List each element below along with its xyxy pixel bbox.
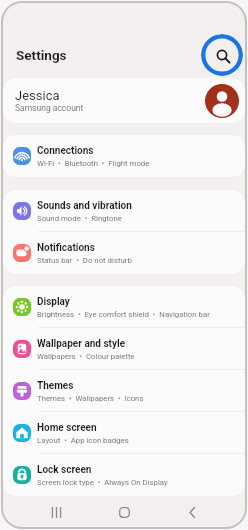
button[interactable]: Recent apps — [41, 497, 71, 527]
staticText: Lock screen — [37, 464, 92, 476]
staticText: Sounds and vibration — [37, 200, 132, 212]
button[interactable]: Back — [177, 497, 207, 527]
staticText: Themes — [37, 380, 74, 392]
staticText: Wallpapers • Colour palette — [37, 352, 135, 361]
staticText: Status bar • Do not disturb — [37, 256, 132, 265]
staticText: Screen lock type • Always On Display — [37, 478, 168, 487]
button[interactable]: Display — [3, 286, 245, 328]
staticText: Layout • App icon badges — [37, 436, 129, 445]
staticText: Themes • Wallpapers • Icons — [37, 394, 144, 403]
button[interactable]: Themes — [3, 370, 245, 412]
staticText: Sound mode • Ringtone — [37, 214, 122, 223]
button[interactable]: Lock screen — [3, 454, 245, 496]
button[interactable]: Notifications — [3, 232, 245, 274]
button[interactable]: Jessica — [3, 78, 245, 123]
button[interactable]: Home — [109, 497, 139, 527]
staticText: Wallpaper and style — [37, 338, 126, 350]
staticText: Connections — [37, 145, 94, 157]
button[interactable]: Search — [201, 34, 243, 76]
staticText: Samsung account — [15, 103, 84, 113]
button[interactable]: Connections — [3, 135, 245, 177]
staticText: Notifications — [37, 242, 95, 254]
staticText: Brightness • Eye comfort shield • Naviga… — [37, 310, 210, 319]
button[interactable]: Home screen — [3, 412, 245, 454]
staticText: Wi-Fi • Bluetooth • Flight mode — [37, 159, 150, 168]
staticText: Settings — [16, 47, 67, 63]
staticText: Display — [37, 296, 70, 308]
staticText: Home screen — [37, 422, 97, 434]
button[interactable]: Sounds and vibration — [3, 190, 245, 232]
button[interactable]: Wallpaper and style — [3, 328, 245, 370]
staticText: Jessica — [15, 88, 60, 103]
